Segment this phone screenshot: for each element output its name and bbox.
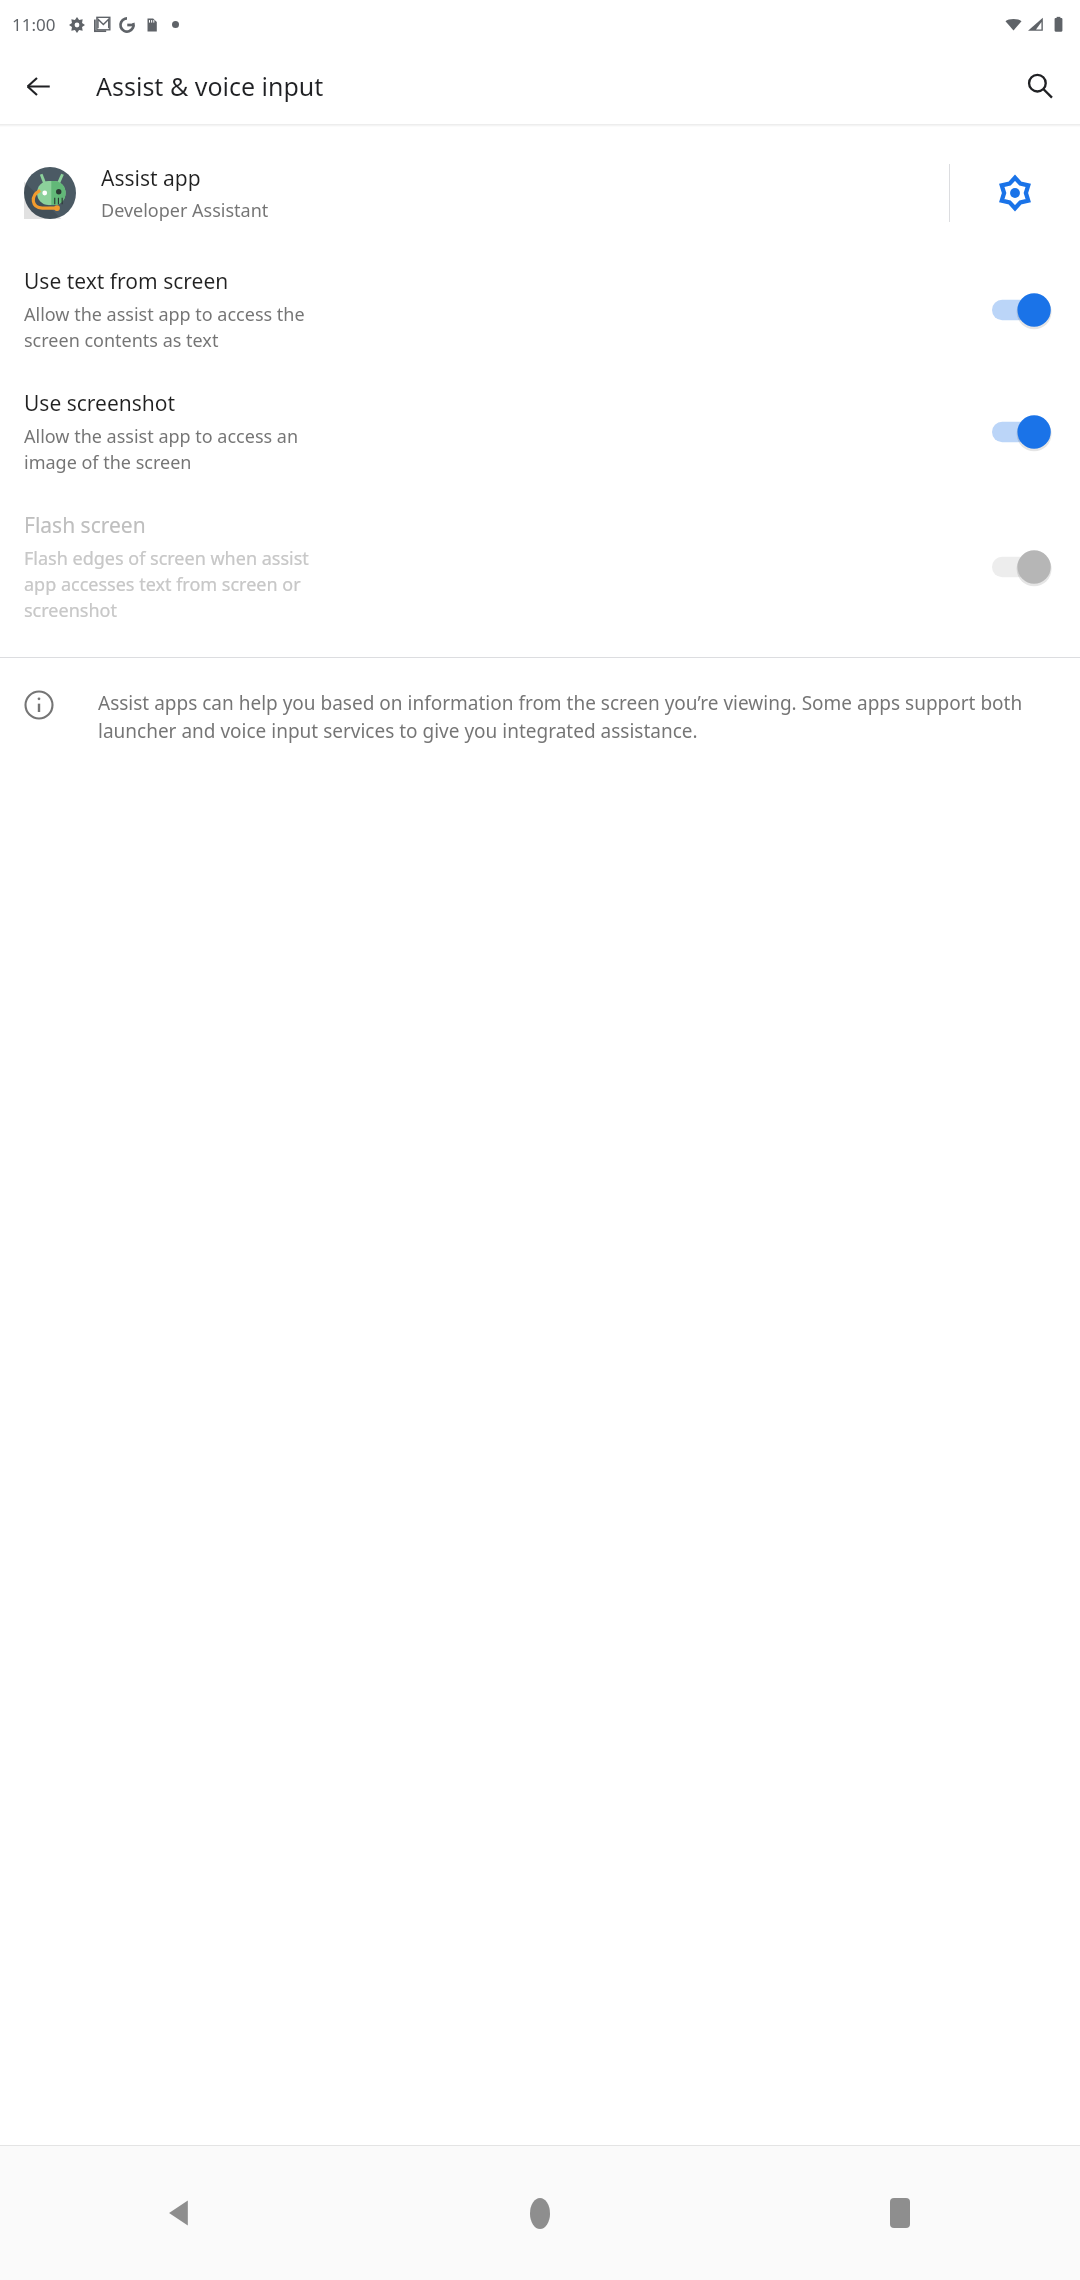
staticText: Assist apps can help you based on inform… [98,690,1050,744]
button[interactable]: Navigate up [12,60,64,112]
button[interactable]: Assist app [0,137,949,249]
button[interactable]: Flash screen [0,493,1080,641]
button[interactable]: Use screenshot [0,371,1080,493]
button[interactable]: Back [0,2146,360,2280]
staticText: Flash edges of screen when assist app ac… [24,546,309,623]
button[interactable]: Use screenshot [984,407,1062,457]
staticText: Assist & voice input [96,69,324,103]
staticText: Allow the assist app to access the scree… [24,302,305,353]
button[interactable]: Use text from screen [984,285,1062,335]
button[interactable]: Flash screen [984,542,1062,592]
staticText: Use text from screen [24,267,229,296]
button[interactable]: Use text from screen [0,249,1080,371]
staticText: Assist app [101,164,201,193]
staticText: Allow the assist app to access an image … [24,424,299,475]
button[interactable]: Assist app settings [950,137,1080,249]
button[interactable]: Recent apps [720,2146,1080,2280]
staticText: 11:00 [12,13,56,36]
staticText: Developer Assistant [101,198,269,223]
button[interactable]: Home [360,2146,720,2280]
button[interactable]: Search [1014,60,1066,112]
staticText: Use screenshot [24,389,176,418]
staticText: Flash screen [24,511,146,540]
